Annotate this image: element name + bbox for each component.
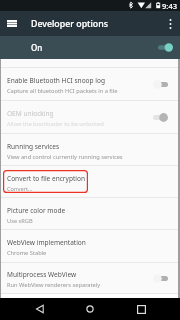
staticText: Chrome Stable	[7, 249, 47, 257]
staticText: View and control currently running servi…	[7, 153, 123, 161]
button[interactable]: OEM unlocking	[0, 101, 180, 134]
staticText: WebView implementation	[7, 238, 86, 247]
staticText: Enable Bluetooth HCI snoop log	[7, 76, 105, 85]
staticText: Convert…	[7, 185, 33, 193]
staticText: Run WebView renderers separately	[7, 281, 101, 289]
staticText: Use sRGB	[7, 217, 33, 225]
button[interactable]: Recent apps	[131, 299, 151, 319]
button[interactable]: On	[0, 36, 180, 59]
staticText: Multiprocess WebView	[7, 270, 77, 279]
staticText: Capture all bluetooth HCI packets in a f…	[7, 87, 118, 95]
button[interactable]: Picture color mode	[0, 198, 180, 230]
button[interactable]: Home	[80, 299, 100, 319]
staticText: Allow the bootloader to be unlocked	[7, 120, 104, 128]
staticText: 9:43	[162, 1, 178, 11]
staticText: Running services	[7, 142, 60, 151]
button[interactable]: Enable Bluetooth HCI snoop log	[0, 68, 180, 101]
button[interactable]: Convert to file encryption	[0, 166, 180, 198]
staticText: On	[31, 42, 43, 53]
button[interactable]: Open navigation drawer	[2, 13, 22, 33]
staticText: Convert to file encryption	[7, 174, 85, 183]
staticText: Picture color mode	[7, 206, 66, 215]
button[interactable]: More options	[160, 14, 180, 34]
button[interactable]: Back	[30, 299, 50, 319]
staticText: OEM unlocking	[7, 109, 54, 118]
button[interactable]: Running services	[0, 134, 180, 166]
staticText: Developer options	[31, 18, 108, 30]
button[interactable]: WebView implementation	[0, 230, 180, 263]
button[interactable]: Multiprocess WebView	[0, 263, 180, 294]
